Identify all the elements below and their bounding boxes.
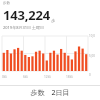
staticText: 0時 xyxy=(2,75,8,79)
staticText: 10,0 xyxy=(89,34,95,38)
staticText: 6時 xyxy=(23,75,29,79)
staticText: 143,224 xyxy=(3,6,50,24)
staticText: 5,00 xyxy=(89,54,95,58)
staticText: 2019年8月31日 土曜日 xyxy=(3,25,45,30)
staticText: 歩数 xyxy=(3,1,10,5)
staticText: 歩数 2日目 xyxy=(30,88,70,98)
button[interactable]: 歩数 2日目 xyxy=(0,86,100,100)
staticText: 0 xyxy=(89,73,91,77)
staticText: 歩 xyxy=(51,18,55,23)
button[interactable]: 10,0 xyxy=(0,34,100,79)
staticText: 18時 xyxy=(66,75,73,79)
staticText: 12時 xyxy=(44,75,51,79)
